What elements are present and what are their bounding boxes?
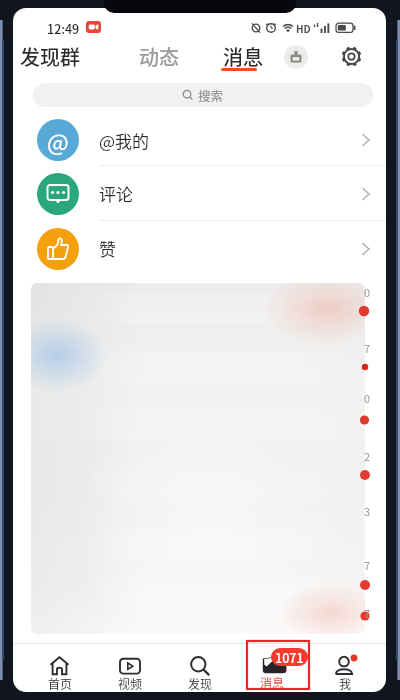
staticText: @ [47,124,69,157]
button[interactable]: 视频 [90,646,170,690]
staticText: 消息 [260,674,285,691]
staticText: 7 [364,605,371,621]
button[interactable]: @ [13,114,386,166]
button[interactable] [338,43,365,70]
button[interactable]: 消息 [223,42,269,72]
staticText: 我 [339,675,352,692]
staticText: 3 [364,503,371,519]
staticText: 赞 [99,236,116,261]
staticText: 首页 [48,675,73,692]
button[interactable]: 首页 [20,646,100,690]
staticText: 7 [364,557,371,573]
staticText: 12:49 [47,19,80,37]
staticText: 1071 [275,648,304,666]
staticText: HD [296,21,311,35]
button[interactable]: 发现群 [20,42,86,70]
staticText: 视频 [118,675,143,692]
staticText: 动态 [139,42,179,70]
staticText: 发现群 [20,42,80,70]
staticText: 0 [364,284,371,300]
staticText: @我的 [99,128,150,153]
button[interactable]: 搜索 [33,83,373,107]
staticText: 消息 [223,42,263,71]
staticText: 搜索 [198,86,224,104]
button[interactable]: 我 [305,646,385,690]
button[interactable]: 发现 [160,646,240,690]
button[interactable]: 动态 [139,42,185,70]
button[interactable] [284,45,308,69]
staticText: 7 [364,340,371,356]
staticText: 2 [364,448,371,464]
button[interactable]: 评论 [13,166,386,221]
button[interactable]: 赞 [13,221,386,276]
staticText: 评论 [99,181,133,206]
button[interactable]: 消息 [232,645,312,690]
staticText: 发现 [188,675,213,692]
staticText: 0 [364,390,371,406]
